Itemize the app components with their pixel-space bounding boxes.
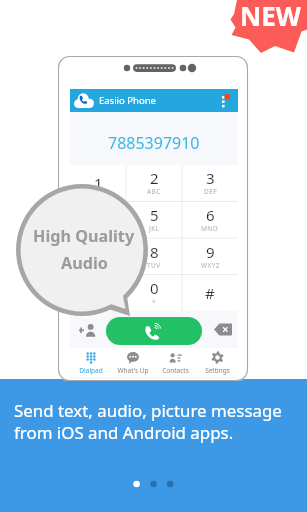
button[interactable]: Backspace [208, 311, 238, 348]
button[interactable]: Dialpad [70, 348, 112, 377]
staticText: 0 [150, 278, 159, 298]
button[interactable]: 3 [182, 165, 238, 202]
staticText: 5 [150, 205, 159, 225]
staticText: 8 [150, 242, 159, 262]
staticText: + [152, 297, 157, 306]
button[interactable]: * [70, 276, 126, 311]
staticText: 1 [94, 173, 103, 193]
button[interactable]: Settings [196, 348, 238, 377]
staticText: 7885397910 [108, 132, 200, 154]
staticText: Dialpad [79, 366, 103, 375]
button[interactable]: 6 [182, 202, 238, 239]
staticText: ABC [147, 187, 161, 196]
staticText: 2 [150, 168, 159, 188]
staticText: JKL [149, 224, 160, 233]
staticText: # [205, 283, 215, 303]
staticText: MNO [201, 224, 219, 233]
staticText: Settings [205, 366, 230, 375]
button[interactable]: 2 [126, 165, 182, 202]
staticText: DEF [204, 187, 217, 196]
staticText: NEW [240, 0, 301, 33]
button[interactable]: 0 [126, 276, 182, 311]
staticText: PQRS [89, 261, 108, 270]
staticText: High Quality [33, 225, 135, 247]
button[interactable]: Contacts [154, 348, 196, 377]
button[interactable]: More options [216, 89, 236, 112]
button[interactable]: 8 [126, 239, 182, 276]
staticText: Contacts [162, 366, 189, 375]
button[interactable]: Easiio Phone [70, 89, 238, 112]
button[interactable]: 4 [70, 202, 126, 239]
button[interactable]: 9 [182, 239, 238, 276]
button[interactable]: # [182, 276, 238, 311]
staticText: 9 [206, 242, 215, 262]
button[interactable]: 5 [126, 202, 182, 239]
staticText: WXYZ [201, 261, 220, 270]
staticText: from iOS and Android apps. [14, 421, 234, 444]
button[interactable]: Add contact [70, 311, 106, 348]
staticText: What's Up [117, 366, 149, 375]
staticText: 6 [206, 205, 215, 225]
staticText: Send text, audio, picture message [14, 399, 282, 422]
staticText: 3 [206, 168, 215, 188]
staticText: 7 [94, 242, 103, 262]
button[interactable]: Call [106, 317, 202, 345]
button[interactable]: 7 [70, 239, 126, 276]
staticText: Audio [61, 252, 108, 274]
staticText: TUV [147, 261, 161, 270]
button[interactable]: 1 [70, 165, 126, 202]
button[interactable]: What's Up [112, 348, 154, 377]
staticText: Easiio Phone [99, 94, 156, 107]
